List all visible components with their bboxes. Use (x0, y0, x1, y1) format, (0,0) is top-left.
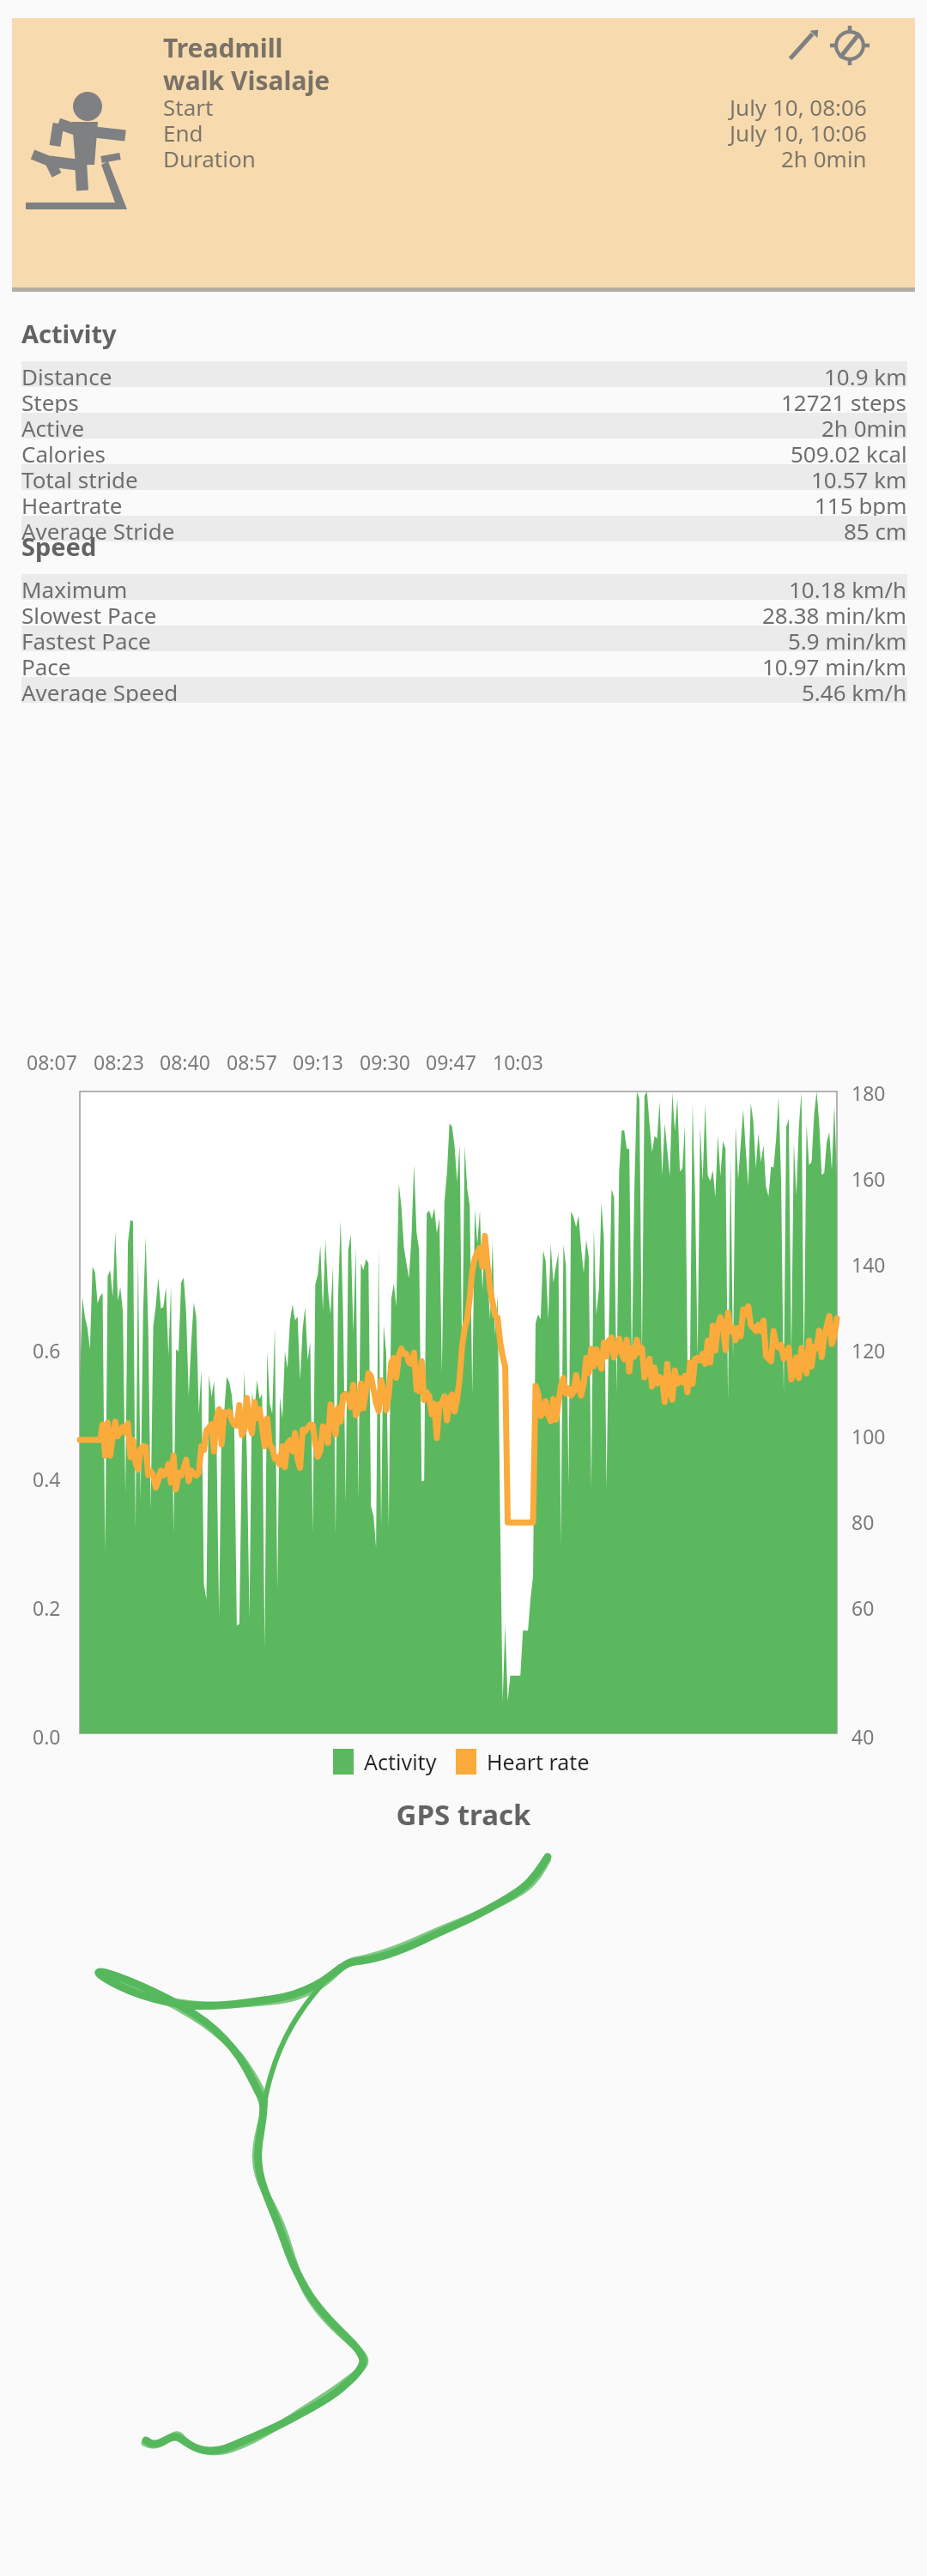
staticText: 120 (851, 1337, 886, 1364)
staticText: Total stride (21, 464, 811, 490)
staticText: 09:30 (360, 1049, 410, 1075)
button[interactable]: Edit (783, 25, 824, 66)
button[interactable]: Average Stride (21, 516, 907, 541)
staticText: July 10, 10:06 (730, 118, 867, 148)
button[interactable]: Average Speed (21, 677, 907, 703)
staticText: 5.9 min/km (788, 626, 907, 651)
staticText: Start (163, 92, 730, 122)
staticText: 10.18 km/h (789, 574, 907, 600)
staticText: 08:23 (94, 1049, 144, 1075)
staticText: Calories (21, 438, 791, 464)
staticText: Distance (21, 361, 824, 387)
staticText: Heartrate (21, 490, 815, 516)
staticText: 0.2 (33, 1594, 61, 1621)
staticText: GPS track (0, 1795, 927, 1834)
staticText: Slowest Pace (21, 600, 762, 626)
button[interactable]: Slowest Pace (21, 600, 907, 626)
staticText: 09:13 (293, 1049, 343, 1075)
staticText: Speed (21, 529, 97, 563)
staticText: 08:40 (160, 1049, 210, 1075)
staticText: Fastest Pace (21, 626, 788, 651)
button[interactable]: Fastest Pace (21, 626, 907, 651)
staticText: 85 cm (844, 516, 907, 541)
button[interactable]: Heartrate (21, 490, 907, 516)
staticText: Duration (163, 143, 781, 173)
staticText: 08:57 (227, 1049, 277, 1075)
staticText: 5.46 km/h (802, 677, 907, 703)
staticText: 10.9 km (824, 361, 907, 387)
staticText: 10.57 km (811, 464, 907, 490)
button[interactable]: No GPS (829, 25, 870, 66)
button[interactable]: Calories (21, 438, 907, 464)
staticText: 0.0 (33, 1723, 61, 1750)
staticText: 100 (851, 1423, 886, 1449)
staticText: 180 (851, 1079, 886, 1106)
staticText: 160 (851, 1165, 886, 1192)
button[interactable]: Active (21, 413, 907, 438)
staticText: Average Stride (21, 516, 844, 541)
staticText: Activity (364, 1747, 437, 1776)
staticText: 509.02 kcal (791, 438, 907, 464)
button[interactable]: Treadmill (12, 18, 915, 292)
staticText: 2h 0min (781, 143, 867, 173)
staticText: 08:07 (27, 1049, 77, 1075)
staticText: 12721 steps (781, 387, 907, 413)
staticText: 60 (851, 1594, 875, 1621)
staticText: Heart rate (487, 1747, 590, 1776)
staticText: 80 (851, 1509, 875, 1535)
staticText: End (163, 118, 730, 148)
button[interactable]: Maximum (21, 574, 907, 600)
staticText: Maximum (21, 574, 789, 600)
staticText: 0.4 (33, 1466, 61, 1492)
staticText: Activity (21, 317, 117, 350)
staticText: 0.6 (33, 1337, 61, 1364)
staticText: 28.38 min/km (762, 600, 907, 626)
staticText: 10:03 (493, 1049, 543, 1075)
staticText: 40 (851, 1723, 875, 1750)
staticText: Treadmill (163, 30, 283, 65)
staticText: Active (21, 413, 821, 438)
button[interactable]: Total stride (21, 464, 907, 490)
staticText: Average Speed (21, 677, 802, 703)
staticText: 2h 0min (821, 413, 907, 438)
staticText: 115 bpm (815, 490, 907, 516)
staticText: Pace (21, 651, 762, 677)
staticText: 10.97 min/km (762, 651, 907, 677)
staticText: walk Visalaje (163, 63, 330, 98)
button[interactable]: Distance (21, 361, 907, 387)
staticText: 09:47 (426, 1049, 476, 1075)
staticText: Steps (21, 387, 781, 413)
staticText: 140 (851, 1251, 886, 1278)
staticText: July 10, 08:06 (730, 92, 867, 122)
button[interactable]: Pace (21, 651, 907, 677)
button[interactable]: Steps (21, 387, 907, 413)
